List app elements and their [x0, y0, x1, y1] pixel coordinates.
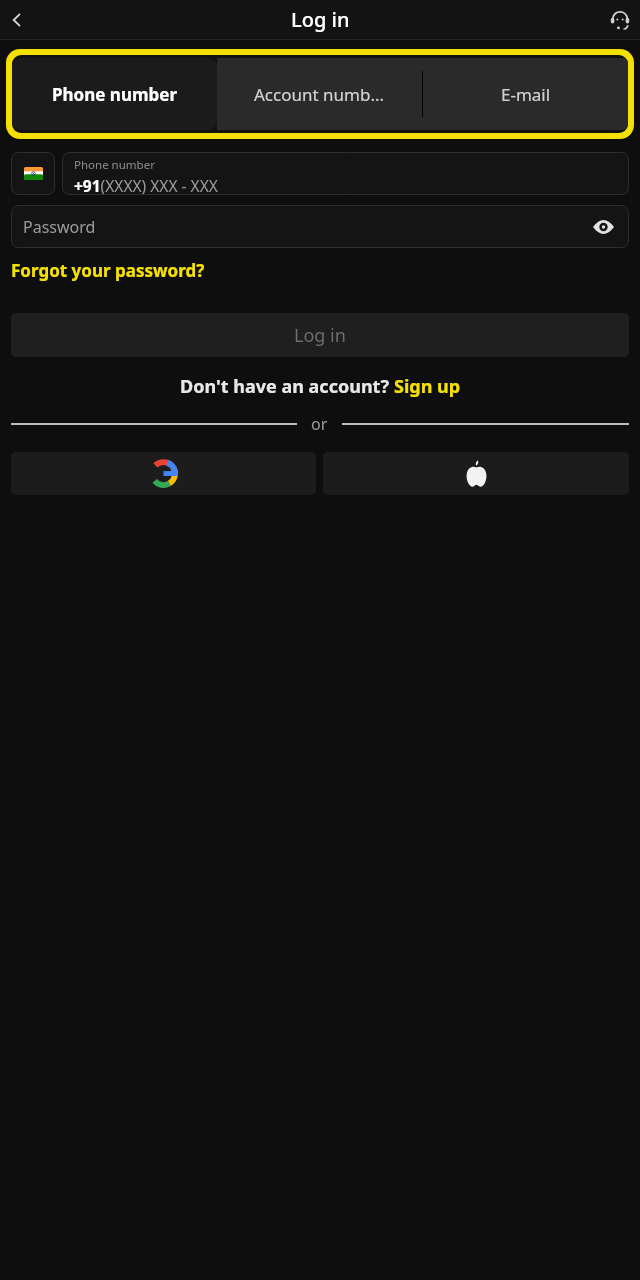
staticText: Password [23, 216, 96, 238]
button[interactable]: Country code India [11, 152, 55, 195]
button[interactable]: Forgot your password? [11, 257, 205, 284]
staticText: Log in [291, 6, 350, 33]
button[interactable]: E-mail [423, 58, 628, 130]
staticText: E-mail [501, 83, 551, 106]
button[interactable]: Back [2, 5, 32, 35]
button[interactable]: Support [604, 4, 636, 36]
button[interactable]: Sign in with Google [11, 452, 316, 495]
staticText: or [311, 413, 328, 435]
staticText: +91(XXXX) XXX - XXX [74, 175, 218, 195]
button[interactable]: Phone number [62, 152, 629, 195]
staticText: Log in [294, 323, 346, 348]
button[interactable]: Log in [11, 313, 629, 357]
button[interactable]: Phone number [12, 58, 217, 130]
staticText: Phone number [52, 83, 178, 106]
button[interactable]: Sign in with Apple [323, 452, 629, 495]
staticText: Account numb... [254, 83, 385, 106]
button[interactable]: Show password [590, 214, 616, 240]
staticText: Phone number [74, 157, 155, 173]
button[interactable]: Password [11, 205, 629, 248]
button[interactable]: Account numb... [217, 58, 422, 130]
button[interactable]: Sign up [394, 374, 461, 399]
staticText: Don't have an account? [180, 374, 394, 399]
